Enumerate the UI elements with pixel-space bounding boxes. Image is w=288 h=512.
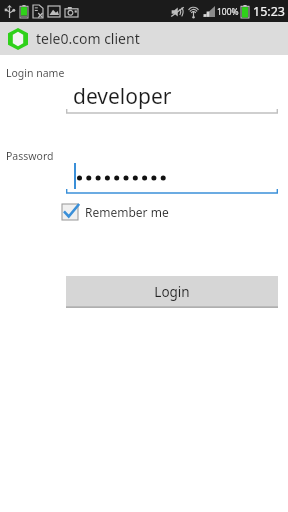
button[interactable]: Remember me — [62, 201, 169, 223]
staticText: developer — [73, 82, 172, 111]
button[interactable]: developer — [66, 81, 278, 114]
staticText: 15:23 — [253, 3, 285, 20]
staticText: 100% — [217, 6, 239, 18]
button[interactable] — [66, 161, 278, 194]
staticText: Login name — [6, 66, 65, 80]
staticText: Login — [154, 283, 190, 301]
staticText: Remember me — [85, 204, 169, 220]
staticText: tele0.com client — [36, 29, 140, 48]
staticText: Password — [6, 149, 54, 163]
button[interactable]: Login — [66, 276, 278, 308]
